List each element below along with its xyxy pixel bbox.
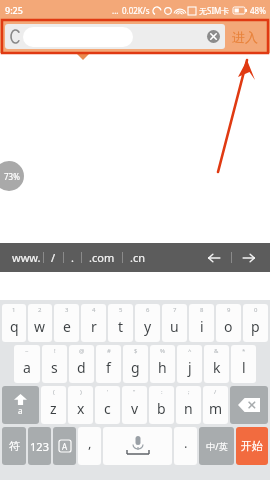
button[interactable]: 3 <box>54 304 79 342</box>
button[interactable]: 开始 <box>236 427 268 465</box>
staticText: r <box>91 317 97 336</box>
staticText: h <box>158 358 167 377</box>
staticText: ; <box>188 388 190 396</box>
button[interactable]: 7 <box>162 304 187 342</box>
button[interactable]: ' <box>95 386 120 424</box>
staticText: % <box>160 347 165 355</box>
staticText: s <box>51 358 58 377</box>
button[interactable]: Forward <box>232 243 266 272</box>
button[interactable]: 5 <box>108 304 133 342</box>
button[interactable]: ) <box>68 386 93 424</box>
staticText: 进入 <box>232 29 258 45</box>
staticText: $ <box>134 347 138 355</box>
staticText: g <box>131 358 140 377</box>
button[interactable]: " <box>122 386 147 424</box>
button[interactable]: ( <box>41 386 66 424</box>
button[interactable]: 123 <box>28 427 51 465</box>
staticText: d <box>77 358 86 377</box>
staticText: & <box>214 347 219 355</box>
staticText: ) <box>80 388 82 396</box>
staticText: y <box>144 317 152 336</box>
button[interactable]: 中/英 <box>199 427 234 465</box>
staticText: 9 <box>227 306 231 314</box>
button[interactable]: 9 <box>216 304 241 342</box>
staticText: a <box>18 405 23 416</box>
button[interactable]: ! <box>42 345 67 383</box>
staticText: www. <box>12 250 41 265</box>
button[interactable]: & <box>204 345 229 383</box>
staticText: 中/英 <box>206 440 228 452</box>
staticText: 2 <box>38 306 42 314</box>
button[interactable]: % <box>150 345 175 383</box>
staticText: x <box>77 399 85 418</box>
button[interactable]: www. <box>10 243 43 272</box>
button[interactable]: Clear <box>5 24 225 49</box>
button[interactable]: .com <box>82 243 122 272</box>
button[interactable]: ; <box>176 386 201 424</box>
staticText: : <box>161 388 163 396</box>
staticText: p <box>251 317 260 336</box>
button[interactable]: . <box>64 243 81 272</box>
staticText: k <box>213 358 221 377</box>
button[interactable]: / <box>44 243 63 272</box>
staticText: # <box>107 347 111 355</box>
button[interactable]: : <box>149 386 174 424</box>
staticText: .cn <box>130 250 146 265</box>
staticText: u <box>170 317 179 336</box>
button[interactable]: , <box>78 427 101 465</box>
staticText: 开始 <box>241 439 263 453</box>
staticText: 1 <box>12 306 16 314</box>
staticText: . <box>71 250 74 265</box>
staticText: 0.02K/s <box>122 5 150 16</box>
button[interactable]: Shift <box>2 386 39 424</box>
button[interactable]: $ <box>123 345 148 383</box>
staticText: ... <box>112 5 119 16</box>
staticText: j <box>188 358 192 377</box>
staticText: 48% <box>250 5 266 16</box>
staticText: w <box>34 317 46 336</box>
staticText: ( <box>53 388 55 396</box>
staticText: c <box>104 399 111 418</box>
button[interactable]: 进入 <box>225 24 265 49</box>
button[interactable]: 0 <box>243 304 268 342</box>
staticText: @ <box>79 347 85 355</box>
button[interactable]: Space <box>103 427 172 465</box>
staticText: , <box>88 434 92 452</box>
button[interactable]: Back <box>197 243 231 272</box>
button[interactable]: ^ <box>177 345 202 383</box>
staticText: q <box>10 317 19 336</box>
button[interactable]: 2 <box>28 304 52 342</box>
staticText: / <box>51 250 56 265</box>
button[interactable]: .cn <box>123 243 153 272</box>
button[interactable]: / <box>203 386 228 424</box>
staticText: t <box>118 317 124 336</box>
staticText: 无SIM卡 <box>199 5 230 16</box>
staticText: l <box>242 358 246 377</box>
button[interactable]: # <box>96 345 121 383</box>
button[interactable]: . <box>174 427 197 465</box>
button[interactable]: 6 <box>135 304 160 342</box>
button[interactable]: ~ <box>14 345 40 383</box>
staticText: ^ <box>188 347 192 355</box>
button[interactable]: 4 <box>81 304 106 342</box>
button[interactable]: Clear <box>207 30 220 43</box>
button[interactable]: @ <box>69 345 94 383</box>
button[interactable]: 8 <box>189 304 214 342</box>
staticText: v <box>131 399 139 418</box>
staticText: 123 <box>30 439 49 454</box>
staticText: / <box>214 388 217 396</box>
button[interactable]: 符 <box>2 427 26 465</box>
button[interactable]: Keyboard layout <box>53 427 76 465</box>
button[interactable]: Backspace <box>230 386 268 424</box>
staticText: .com <box>89 250 115 265</box>
staticText: ~ <box>25 347 29 355</box>
button[interactable]: 1 <box>2 304 26 342</box>
staticText: 6 <box>146 306 150 314</box>
staticText: 7 <box>173 306 177 314</box>
staticText: 3 <box>65 306 69 314</box>
staticText: 4 <box>92 306 96 314</box>
staticText: ' <box>107 388 109 396</box>
staticText: 0 <box>254 306 258 314</box>
staticText: o <box>224 317 233 336</box>
button[interactable]: * <box>231 345 256 383</box>
